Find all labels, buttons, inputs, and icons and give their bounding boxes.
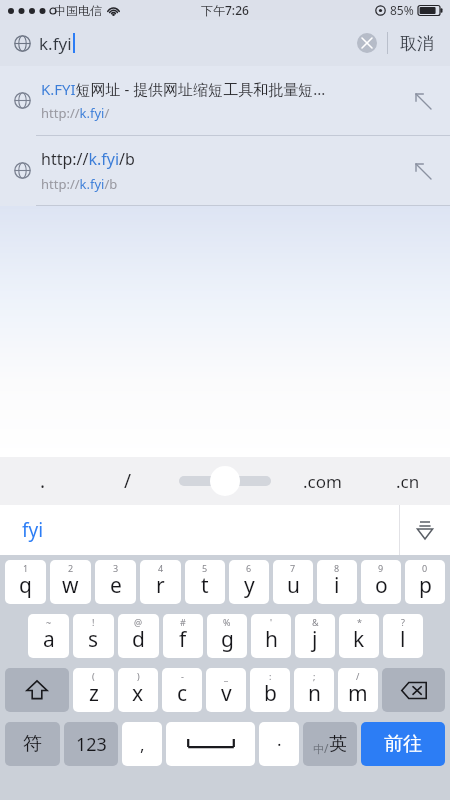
button[interactable]: 8 [317, 560, 357, 604]
button[interactable]: 5 [185, 560, 225, 604]
button[interactable]: · [259, 722, 299, 766]
button[interactable]: ~ [28, 614, 69, 658]
button[interactable]: 前往 [361, 722, 445, 766]
staticText: ! [92, 616, 95, 628]
button[interactable]: Shift [5, 668, 69, 712]
staticText: 3 [113, 562, 119, 574]
button[interactable]: @ [118, 614, 159, 658]
button[interactable]: * [339, 614, 379, 658]
staticText: / [124, 468, 132, 494]
button[interactable]: ? [383, 614, 423, 658]
button[interactable]: .com [280, 457, 365, 505]
staticText: o [375, 571, 388, 600]
button[interactable]: - [162, 668, 202, 712]
staticText: 9 [378, 562, 384, 574]
button[interactable]: Slider [170, 457, 280, 505]
button[interactable]: .cn [365, 457, 450, 505]
staticText: h [265, 625, 278, 654]
staticText: 4 [158, 562, 164, 574]
staticText: 符 [23, 732, 42, 756]
staticText: http://k.fyi/b [41, 175, 118, 193]
staticText: 123 [76, 732, 107, 757]
staticText: ~ [46, 616, 52, 628]
button[interactable]: ) [118, 668, 158, 712]
staticText: i [334, 571, 340, 600]
button[interactable]: . [0, 457, 85, 505]
staticText: v [221, 679, 232, 708]
staticText: fyi [22, 517, 44, 543]
staticText: c [177, 679, 188, 708]
staticText: t [201, 571, 209, 600]
button[interactable]: k.fyi [0, 20, 450, 66]
button[interactable]: Space [166, 722, 255, 766]
staticText: . [40, 468, 46, 494]
button[interactable]: Switch language [303, 722, 357, 766]
staticText: % [223, 616, 231, 628]
staticText: .cn [396, 470, 420, 493]
button[interactable]: / [85, 457, 170, 505]
staticText: * [357, 616, 362, 628]
staticText: q [19, 571, 32, 600]
staticText: 取消 [400, 33, 434, 54]
button[interactable]: 123 [64, 722, 118, 766]
staticText: 英 [329, 733, 347, 756]
staticText: 2 [68, 562, 74, 574]
button[interactable]: Insert suggestion [410, 88, 436, 114]
button[interactable]: 1 [5, 560, 46, 604]
button[interactable]: 符 [5, 722, 60, 766]
button[interactable]: 2 [50, 560, 91, 604]
staticText: k.fyi [39, 32, 72, 55]
button[interactable]: ! [73, 614, 114, 658]
button[interactable]: ' [251, 614, 291, 658]
staticText: f [179, 625, 187, 654]
button[interactable]: Backspace [382, 668, 445, 712]
staticText: x [132, 679, 144, 708]
button[interactable]: , [122, 722, 162, 766]
staticText: ' [270, 616, 273, 628]
button[interactable]: _ [206, 668, 246, 712]
staticText: http://k.fyi/ [41, 104, 110, 122]
button[interactable]: : [250, 668, 290, 712]
button[interactable]: % [207, 614, 247, 658]
button[interactable]: 4 [140, 560, 181, 604]
staticText: 中 [313, 742, 324, 756]
button[interactable]: Clear [357, 33, 377, 53]
staticText: ( [92, 670, 95, 682]
staticText: & [312, 616, 319, 628]
button[interactable]: # [163, 614, 203, 658]
staticText: p [419, 571, 432, 600]
button[interactable]: K.FYI短网址 - 提供网址缩短工具和批量短... [0, 66, 450, 135]
staticText: / [324, 740, 329, 756]
staticText: K.FYI短网址 - 提供网址缩短工具和批量短... [41, 79, 326, 99]
staticText: y [244, 571, 255, 600]
button[interactable]: ; [294, 668, 334, 712]
staticText: , [140, 733, 145, 756]
button[interactable]: 3 [95, 560, 136, 604]
button[interactable]: 取消 [398, 29, 436, 58]
staticText: # [180, 616, 186, 628]
staticText: 0 [422, 562, 428, 574]
button[interactable]: http://k.fyi/b [0, 136, 450, 205]
staticText: r [156, 571, 165, 600]
button[interactable]: / [338, 668, 378, 712]
staticText: e [110, 571, 122, 600]
staticText: 8 [334, 562, 340, 574]
button[interactable]: Insert suggestion [410, 158, 436, 184]
staticText: @ [134, 616, 143, 628]
button[interactable]: 7 [273, 560, 313, 604]
staticText: w [62, 571, 79, 600]
staticText: l [400, 625, 406, 654]
staticText: ? [401, 616, 405, 628]
staticText: d [132, 625, 145, 654]
staticText: · [277, 733, 282, 756]
staticText: 6 [246, 562, 252, 574]
button[interactable]: Hide keyboard [400, 505, 450, 555]
button[interactable]: 6 [229, 560, 269, 604]
button[interactable]: ( [73, 668, 114, 712]
button[interactable]: 0 [405, 560, 445, 604]
staticText: 中国电信 [54, 3, 102, 18]
button[interactable]: 9 [361, 560, 401, 604]
staticText: m [348, 679, 368, 708]
button[interactable]: & [295, 614, 335, 658]
button[interactable]: fyi [0, 505, 399, 555]
